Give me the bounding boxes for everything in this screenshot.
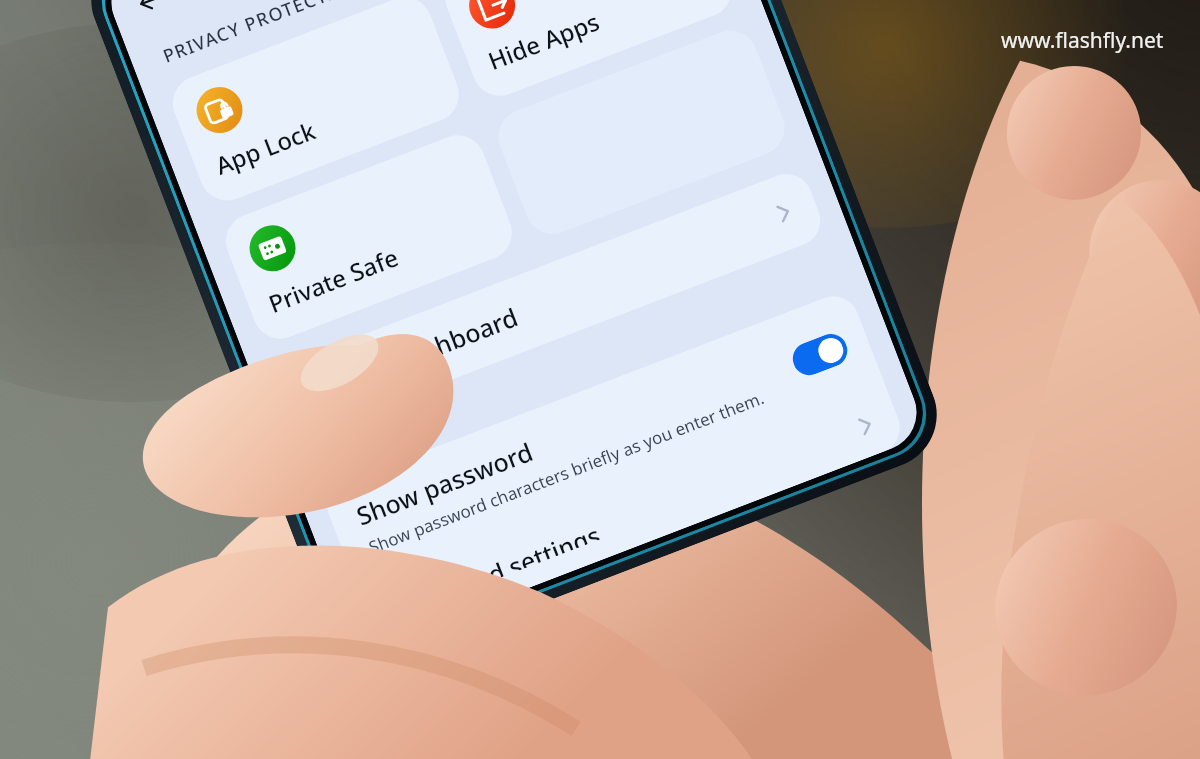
button[interactable]: Show password (320, 289, 885, 587)
staticText: Privacy dashboard (304, 299, 523, 410)
button[interactable] (490, 22, 793, 242)
staticText: Advanced settings (388, 517, 601, 617)
staticText: Privacy settings (316, 406, 448, 477)
button[interactable]: Hide Apps (437, 0, 740, 104)
staticText: Hide Apps (483, 4, 604, 77)
button[interactable]: Toggle on (788, 329, 852, 380)
button[interactable]: Advanced settings (356, 384, 907, 645)
staticText: Private Safe (264, 240, 403, 320)
staticText: App Lock (211, 113, 320, 182)
staticText: PRIVACY PROTECTION (159, 0, 367, 69)
staticText: Show password (351, 434, 538, 533)
staticText: Show password characters briefly as you … (365, 386, 767, 559)
staticText: www.flashfly.net (1001, 26, 1164, 55)
other: Open (770, 198, 798, 227)
other: Open (851, 411, 880, 440)
button[interactable]: Privacy dashboard (273, 166, 828, 438)
button[interactable]: Back (120, 0, 182, 31)
button[interactable]: App Lock (165, 0, 467, 209)
button[interactable]: Private Safe (218, 127, 520, 347)
